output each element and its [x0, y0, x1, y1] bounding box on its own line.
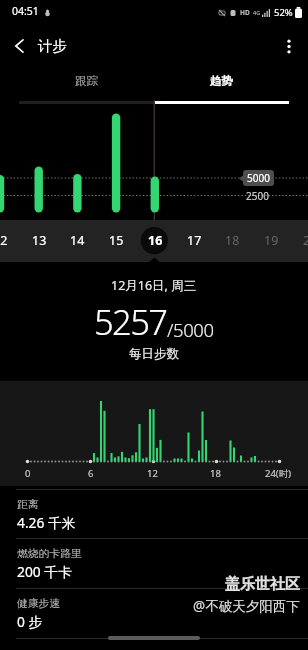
button[interactable]: 健康步速 — [0, 588, 308, 638]
button[interactable]: Back — [0, 27, 38, 65]
staticText: 20 — [303, 232, 308, 249]
staticText: 17 — [187, 232, 202, 249]
button[interactable]: 15 — [101, 225, 131, 256]
button[interactable]: More options — [270, 27, 308, 65]
staticText: 04:51 — [12, 4, 39, 18]
staticText: 52% — [274, 6, 293, 19]
button[interactable]: 距离 — [0, 489, 308, 539]
staticText: 4.26 千米 — [17, 513, 76, 532]
button[interactable]: 12 — [0, 225, 15, 256]
staticText: HD — [240, 8, 250, 17]
button[interactable]: 趋势 — [154, 70, 289, 104]
staticText: 5257 — [94, 298, 167, 345]
staticText: 盖乐世社区 — [225, 575, 300, 594]
button[interactable]: 14 — [62, 225, 92, 256]
staticText: 24(时) — [265, 467, 292, 480]
staticText: 18 — [225, 232, 240, 249]
staticText: 4G — [253, 9, 261, 16]
button[interactable]: 18 — [217, 225, 247, 256]
staticText: 2500 — [246, 189, 269, 203]
button[interactable]: 16 — [140, 225, 170, 256]
button[interactable]: 20 — [295, 225, 308, 256]
staticText: 15 — [109, 232, 124, 249]
staticText: 健康步速 — [17, 597, 61, 611]
staticText: 19 — [264, 232, 279, 249]
staticText: 12月16日, 周三 — [111, 277, 197, 294]
staticText: 5000 — [247, 171, 270, 185]
staticText: 18 — [210, 467, 221, 480]
button[interactable]: 19 — [256, 225, 286, 256]
staticText: 12 — [0, 232, 8, 249]
button[interactable]: 跟踪 — [19, 70, 154, 104]
staticText: 6 — [88, 467, 94, 480]
staticText: 计步 — [38, 37, 67, 55]
staticText: 趋势 — [210, 74, 233, 88]
button[interactable]: 13 — [24, 225, 54, 256]
staticText: 0 步 — [17, 612, 43, 631]
staticText: @不破天夕阳西下 — [193, 597, 300, 615]
staticText: 200 千卡 — [17, 562, 72, 581]
button[interactable]: 17 — [179, 225, 209, 256]
staticText: 14 — [70, 232, 85, 249]
staticText: 跟踪 — [75, 74, 98, 88]
staticText: 16 — [148, 232, 163, 249]
staticText: 0 — [25, 467, 31, 480]
staticText: 每日步数 — [129, 346, 179, 362]
staticText: 13 — [32, 232, 47, 249]
staticText: 燃烧的卡路里 — [17, 547, 82, 561]
staticText: 12 — [147, 467, 158, 480]
staticText: /5000 — [167, 317, 214, 342]
button[interactable]: 燃烧的卡路里 — [0, 538, 308, 588]
staticText: 距离 — [17, 498, 39, 512]
